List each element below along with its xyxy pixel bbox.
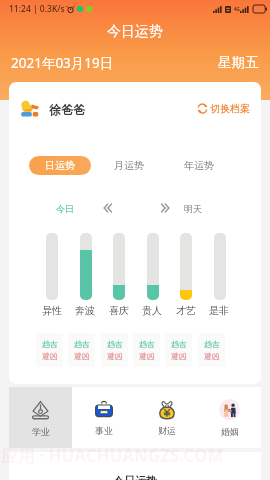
button[interactable]: 趋吉 — [68, 333, 95, 367]
staticText: 学业 — [32, 426, 50, 437]
button[interactable]: Next day — [158, 201, 172, 215]
button[interactable]: 徐爸爸 — [18, 98, 85, 120]
button[interactable]: 今日 — [56, 203, 74, 214]
staticText: 奔波 — [75, 304, 95, 317]
staticText: 事业 — [95, 425, 113, 436]
button[interactable]: 年运势 — [169, 156, 229, 175]
staticText: 趋吉 — [139, 339, 155, 349]
staticText: 11:24 | 0.3K/s — [9, 3, 65, 15]
staticText: 2021年03月19日 — [11, 54, 114, 72]
staticText: 切换档案 — [210, 102, 250, 115]
staticText: 避凶 — [74, 351, 90, 361]
staticText: 避凶 — [204, 351, 220, 361]
staticText: 趋吉 — [204, 339, 220, 349]
staticText: 避凶 — [139, 351, 155, 361]
staticText: 才艺 — [176, 304, 196, 317]
staticText: 星期五 — [218, 54, 259, 71]
staticText: 异性 — [42, 304, 62, 317]
button[interactable]: 切换档案 — [198, 102, 250, 115]
staticText: 今日运势 — [113, 474, 157, 480]
button[interactable]: 趋吉 — [36, 333, 63, 367]
staticText: 日运势 — [45, 159, 75, 172]
button[interactable]: 月运势 — [99, 156, 159, 175]
staticText: 避凶 — [42, 351, 58, 361]
staticText: 避凶 — [171, 351, 187, 361]
staticText: 趋吉 — [107, 339, 123, 349]
staticText: 明天 — [184, 203, 202, 214]
staticText: 趋吉 — [42, 339, 58, 349]
staticText: 4G — [234, 6, 240, 12]
staticText: 财运 — [158, 425, 176, 436]
button[interactable]: 趋吉 — [198, 333, 225, 367]
button[interactable]: 日运势 — [29, 156, 91, 175]
staticText: 趋吉 — [74, 339, 90, 349]
button[interactable]: 明天 — [184, 203, 202, 214]
button[interactable]: Previous day — [100, 201, 114, 215]
button[interactable]: 财运 — [135, 387, 198, 448]
button[interactable]: 学业 — [9, 387, 72, 448]
button[interactable]: 趋吉 — [101, 333, 128, 367]
staticText: 避凶 — [107, 351, 123, 361]
staticText: 徐爸爸 — [49, 102, 85, 117]
staticText: 今日运势 — [107, 23, 163, 41]
staticText: 是非 — [209, 304, 229, 317]
staticText: 婚姻 — [221, 426, 239, 437]
staticText: 今日 — [56, 203, 74, 214]
staticText: 趋吉 — [171, 339, 187, 349]
staticText: 创应用 · HUACHUANGZS.COM — [0, 444, 224, 467]
button[interactable]: 事业 — [72, 387, 135, 448]
staticText: 喜庆 — [109, 304, 129, 317]
button[interactable]: 趋吉 — [165, 333, 192, 367]
button[interactable]: 趋吉 — [133, 333, 160, 367]
staticText: 贵人 — [142, 304, 162, 317]
staticText: 年运势 — [184, 159, 214, 172]
button[interactable]: 婚姻 — [198, 387, 261, 448]
staticText: 月运势 — [114, 159, 144, 172]
